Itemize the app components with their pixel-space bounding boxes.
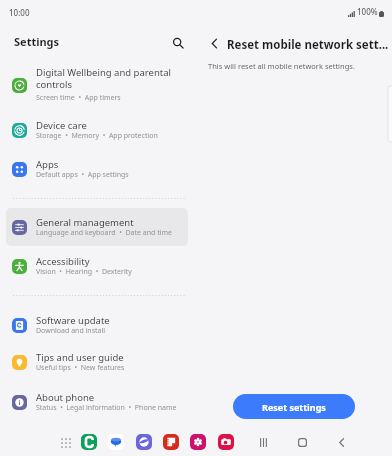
button[interactable]: Recents: [256, 435, 271, 450]
button[interactable]: phone: [81, 434, 97, 450]
staticText: 100%: [357, 6, 378, 17]
button[interactable]: About phone: [6, 387, 194, 417]
button[interactable]: Back: [205, 34, 224, 53]
staticText: Accessibility: [36, 255, 90, 268]
button[interactable]: All apps: [59, 436, 72, 449]
staticText: Tips and user guide: [36, 351, 124, 364]
button[interactable]: Reset settings: [233, 394, 355, 419]
button[interactable]: flower: [190, 434, 206, 450]
staticText: Apps: [36, 158, 59, 171]
staticText: Language and keyboard • Date and time: [36, 228, 173, 238]
staticText: Screen time • App timers: [36, 93, 121, 103]
button[interactable]: Search: [168, 33, 188, 53]
staticText: Status • Legal information • Phone name: [36, 403, 177, 413]
button[interactable]: camera: [218, 434, 234, 450]
button[interactable]: Tips and user guide: [6, 347, 194, 377]
staticText: Settings: [14, 34, 60, 49]
staticText: Device care: [36, 119, 87, 132]
button[interactable]: Apps: [6, 154, 194, 184]
button[interactable]: Back: [334, 435, 349, 450]
staticText: About phone: [36, 391, 95, 404]
button[interactable]: internet: [136, 434, 152, 450]
button[interactable]: Digital Wellbeing and parental controls: [6, 64, 194, 102]
staticText: Vision • Hearing • Dexterity: [36, 267, 132, 277]
staticText: General management: [36, 216, 134, 229]
staticText: This will reset all mobile network setti…: [208, 61, 355, 71]
staticText: Useful tips • New features: [36, 363, 125, 373]
staticText: Reset mobile network sett...: [227, 37, 389, 53]
button[interactable]: Software update: [6, 310, 194, 340]
staticText: Software update: [36, 314, 110, 327]
staticText: Download and install: [36, 326, 106, 336]
staticText: Reset settings: [262, 401, 326, 413]
button[interactable]: Device care: [6, 115, 194, 145]
button[interactable]: Home: [295, 435, 310, 450]
button[interactable]: General management: [6, 212, 194, 242]
staticText: 10:00: [9, 7, 30, 18]
button[interactable]: messages: [108, 434, 124, 450]
button[interactable]: notes: [163, 434, 179, 450]
button[interactable]: Accessibility: [6, 251, 194, 281]
staticText: Digital Wellbeing and parental controls: [36, 66, 194, 91]
staticText: Default apps • App settings: [36, 170, 129, 180]
staticText: Storage • Memory • App protection: [36, 131, 158, 141]
